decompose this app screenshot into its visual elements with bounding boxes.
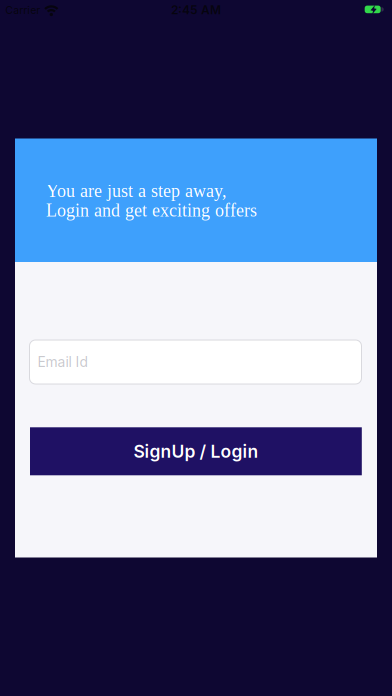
staticText: Email Id — [37, 354, 87, 370]
staticText: Login and get exciting offers — [46, 200, 257, 220]
staticText: Carrier — [5, 4, 40, 16]
button[interactable]: SignUp / Login — [30, 427, 362, 475]
staticText: You are just a step away, — [46, 181, 227, 201]
button[interactable]: Email Id — [29, 340, 361, 384]
staticText: 2:45 AM — [171, 3, 221, 17]
staticText: SignUp / Login — [133, 441, 258, 462]
